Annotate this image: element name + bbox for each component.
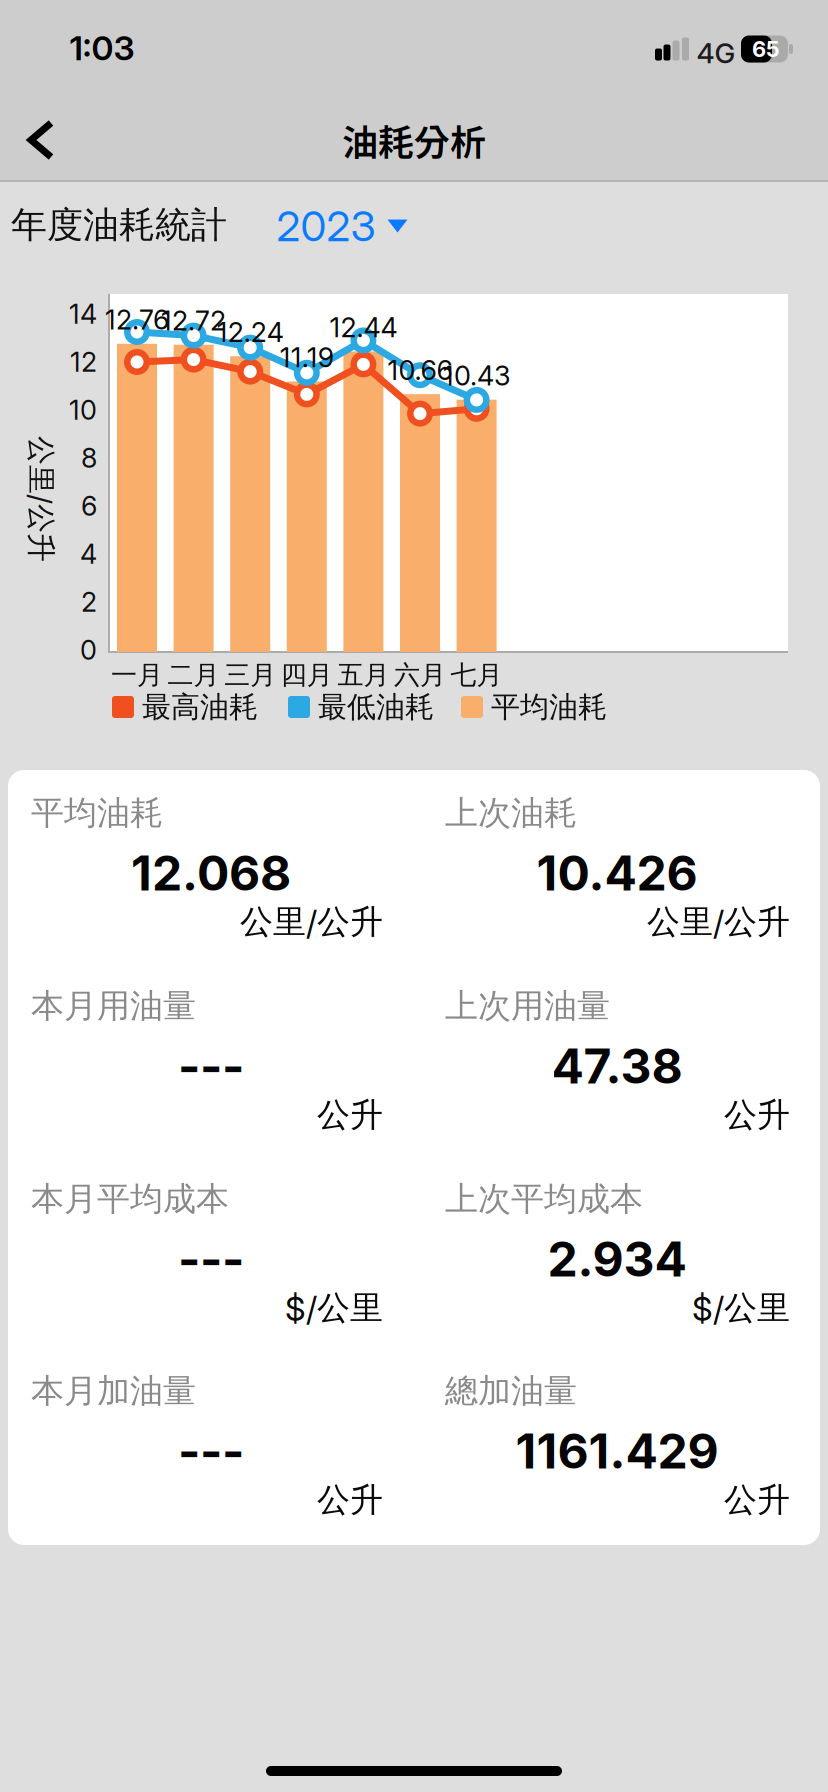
staticText: 公里/公升 xyxy=(0,477,104,521)
staticText: 0 xyxy=(80,631,97,669)
staticText: 七月 xyxy=(451,655,503,694)
staticText: 六月 xyxy=(394,655,446,694)
staticText: 12.72 xyxy=(161,301,226,340)
staticText: 公里/公升 xyxy=(240,897,383,947)
staticText: 最低油耗 xyxy=(318,685,434,729)
staticText: 總加油量 xyxy=(445,1366,577,1416)
staticText: 12.44 xyxy=(329,308,397,347)
staticText: 平均油耗 xyxy=(491,685,607,729)
staticText: 2023 xyxy=(276,196,375,256)
staticText: 一月 xyxy=(111,655,163,694)
staticText: 11.19 xyxy=(280,338,334,377)
staticText: 10.426 xyxy=(536,838,697,907)
staticText: 1:03 xyxy=(69,23,134,72)
staticText: $/公里 xyxy=(692,1283,790,1333)
staticText: 上次油耗 xyxy=(445,788,577,838)
staticText: 47.38 xyxy=(551,1031,682,1100)
staticText: 1161.429 xyxy=(515,1416,718,1485)
staticText: 年度油耗統計 xyxy=(11,198,227,252)
staticText: 公升 xyxy=(724,1090,790,1140)
staticText: $/公里 xyxy=(285,1283,383,1333)
staticText: 12.76 xyxy=(105,300,169,339)
staticText: 上次用油量 xyxy=(445,981,610,1031)
staticText: 三月 xyxy=(224,655,276,694)
staticText: 12 xyxy=(70,343,97,381)
button[interactable] xyxy=(27,119,55,161)
staticText: 公里/公升 xyxy=(647,897,790,947)
staticText: 最高油耗 xyxy=(142,685,258,729)
staticText: 2.934 xyxy=(547,1224,686,1293)
staticText: 12.068 xyxy=(131,838,291,907)
staticText: 14 xyxy=(69,295,97,333)
staticText: 4G xyxy=(696,33,735,73)
button[interactable]: 2023 xyxy=(276,196,407,256)
staticText: 12.24 xyxy=(217,313,284,352)
staticText: 本月加油量 xyxy=(31,1366,196,1416)
staticText: 2 xyxy=(81,583,97,621)
staticText: 10 xyxy=(69,391,97,429)
staticText: --- xyxy=(178,1416,244,1485)
staticText: 公升 xyxy=(317,1090,383,1140)
staticText: 6 xyxy=(81,487,97,525)
staticText: 四月 xyxy=(281,655,333,694)
staticText: 本月平均成本 xyxy=(31,1174,229,1224)
staticText: 4 xyxy=(80,535,97,573)
staticText: 公升 xyxy=(317,1475,383,1525)
staticText: 10.43 xyxy=(443,356,510,395)
staticText: 五月 xyxy=(337,655,389,694)
staticText: 65 xyxy=(752,33,780,65)
staticText: 10.66 xyxy=(387,351,452,390)
staticText: 上次平均成本 xyxy=(445,1174,643,1224)
staticText: --- xyxy=(178,1031,244,1100)
staticText: 8 xyxy=(81,439,97,477)
staticText: 公升 xyxy=(724,1475,790,1525)
staticText: 平均油耗 xyxy=(31,788,163,838)
staticText: --- xyxy=(178,1224,244,1293)
staticText: 本月用油量 xyxy=(31,981,196,1031)
staticText: 油耗分析 xyxy=(342,109,486,171)
staticText: 二月 xyxy=(168,655,220,694)
